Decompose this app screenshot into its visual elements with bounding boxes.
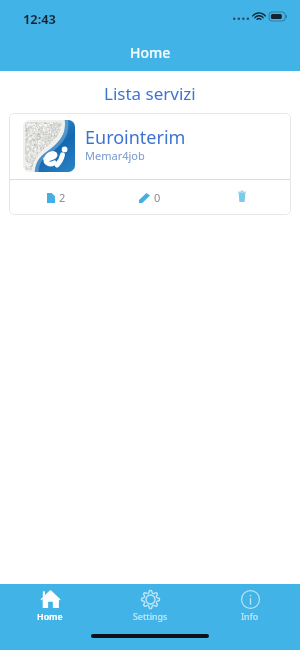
- button[interactable]: Documents: [9, 180, 103, 215]
- button[interactable]: Delete: [197, 180, 291, 215]
- button[interactable]: Settings: [100, 584, 200, 650]
- button[interactable]: Edit: [103, 180, 197, 215]
- staticText: Home: [130, 43, 171, 62]
- staticText: Lista servizi: [104, 82, 196, 105]
- staticText: Memar4job: [85, 148, 145, 163]
- staticText: Settings: [133, 611, 168, 623]
- staticText: 12:43: [23, 10, 56, 27]
- button[interactable]: Eurointerim: [9, 113, 291, 215]
- staticText: Home: [37, 611, 63, 623]
- staticText: Info: [241, 611, 259, 623]
- staticText: Eurointerim: [85, 125, 186, 150]
- staticText: 0: [154, 190, 161, 205]
- button[interactable]: Info: [200, 584, 300, 650]
- button[interactable]: Home: [0, 584, 100, 650]
- staticText: 2: [59, 190, 66, 205]
